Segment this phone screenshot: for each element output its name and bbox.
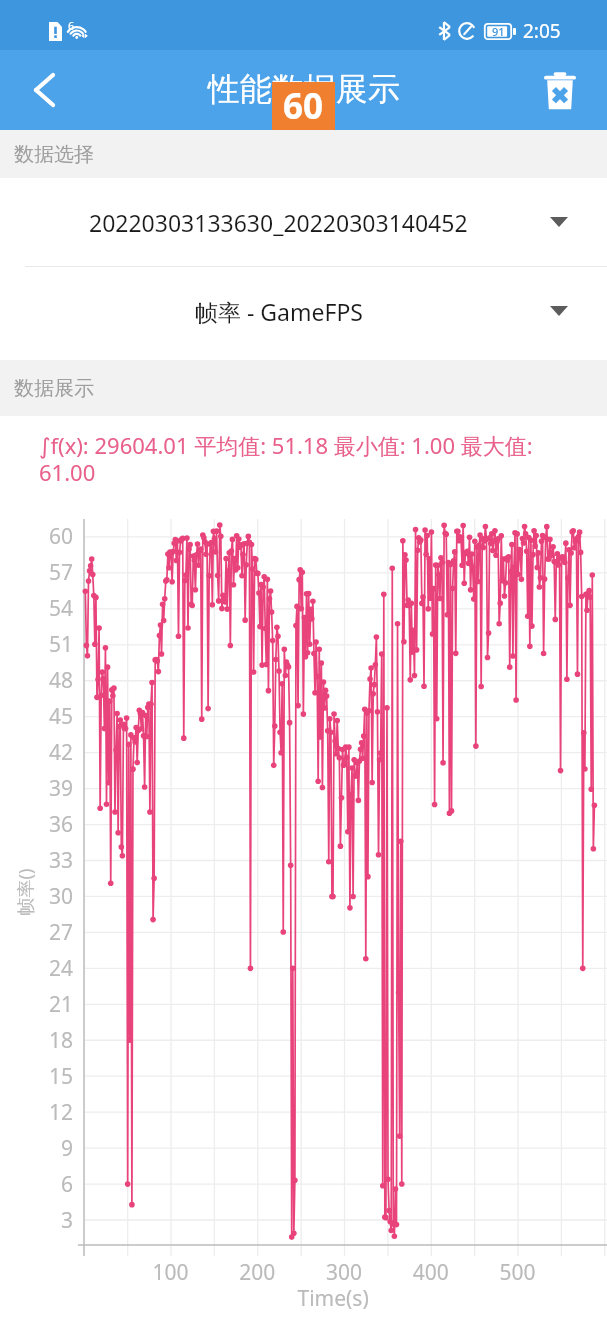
staticText: 数据选择 [14, 142, 94, 167]
staticText: 20220303133630_20220303140452 [89, 207, 468, 238]
button[interactable]: Delete [513, 50, 607, 130]
staticText: 2:05 [523, 18, 561, 44]
staticText: 帧率 - GameFPS [195, 296, 363, 327]
button[interactable]: 帧率 - GameFPS [0, 267, 607, 355]
button[interactable]: 20220303133630_20220303140452 [0, 178, 607, 266]
button[interactable]: Back [0, 50, 88, 130]
staticText: 91 [492, 24, 505, 39]
staticText: 性能数据展示 [208, 69, 400, 109]
staticText: 6 [68, 18, 75, 33]
staticText: 数据展示 [14, 376, 94, 401]
staticText: ∫f(x): 29604.01 平均值: 51.18 最小值: 1.00 最大值… [39, 430, 567, 488]
staticText: 60 [283, 82, 324, 130]
